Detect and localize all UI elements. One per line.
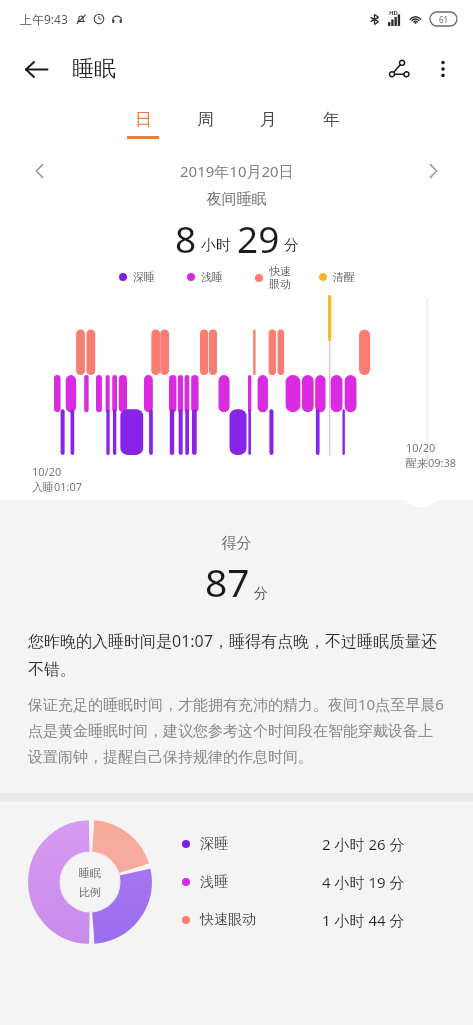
button[interactable]: 深睡: [182, 825, 473, 863]
staticText: 年: [323, 109, 340, 130]
staticText: 得分: [0, 534, 473, 553]
staticText: 快速 眼动: [269, 264, 291, 291]
staticText: 8: [175, 213, 197, 259]
button[interactable]: Previous day: [22, 153, 58, 189]
staticText: 分: [284, 236, 299, 255]
staticText: 夜间睡眠: [0, 190, 473, 209]
button[interactable]: 日: [111, 100, 174, 152]
staticText: HD: [389, 9, 398, 17]
staticText: 保证充足的睡眠时间，才能拥有充沛的精力。夜间10点至早晨6点是黄金睡眠时间，建议…: [28, 694, 445, 767]
button[interactable]: Share: [377, 47, 421, 91]
button[interactable]: 浅睡: [182, 863, 473, 901]
staticText: 2 小时 26 分: [322, 834, 405, 854]
staticText: 深睡: [200, 835, 292, 853]
staticText: 10/20: [32, 464, 62, 479]
staticText: 1 小时 44 分: [322, 910, 405, 930]
staticText: 比例: [79, 885, 101, 899]
staticText: 小时: [201, 236, 231, 255]
staticText: 87: [205, 555, 250, 608]
staticText: 月: [260, 109, 277, 130]
staticText: 分: [254, 585, 268, 603]
staticText: 快速眼动: [200, 911, 292, 929]
staticText: 睡眠: [79, 866, 101, 880]
staticText: 4 小时 19 分: [322, 872, 405, 892]
button[interactable]: 快速眼动: [182, 901, 473, 939]
staticText: 61: [439, 14, 449, 25]
button[interactable]: 浅睡: [187, 270, 223, 284]
staticText: 日: [135, 109, 152, 130]
button[interactable]: 深睡: [119, 270, 155, 284]
staticText: 2019年10月20日: [180, 161, 294, 181]
staticText: 清醒: [333, 270, 355, 284]
button[interactable]: 月: [237, 100, 300, 152]
staticText: 29: [237, 213, 280, 259]
button[interactable]: 清醒: [319, 270, 355, 284]
staticText: 入睡01:07: [32, 479, 83, 494]
staticText: 10/20: [406, 440, 436, 455]
button[interactable]: 快速 眼动: [255, 264, 291, 291]
staticText: 您昨晚的入睡时间是01:07，睡得有点晚，不过睡眠质量还不错。: [28, 630, 445, 680]
button[interactable]: Back: [14, 47, 58, 91]
button[interactable]: More options: [421, 47, 465, 91]
button[interactable]: 年: [300, 100, 363, 152]
staticText: 深睡: [133, 270, 155, 284]
staticText: 周: [197, 109, 214, 130]
staticText: 浅睡: [201, 270, 223, 284]
staticText: 上午9:43: [20, 11, 68, 27]
button[interactable]: 周: [174, 100, 237, 152]
staticText: 浅睡: [200, 873, 292, 891]
staticText: 睡眠: [72, 55, 116, 83]
staticText: 醒来09:38: [406, 455, 457, 470]
button[interactable]: Next day: [415, 153, 451, 189]
